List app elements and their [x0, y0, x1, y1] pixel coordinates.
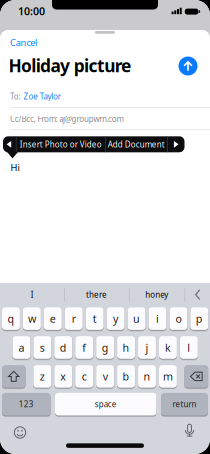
- button[interactable]: Emoji: [12, 424, 28, 440]
- staticText: x: [60, 369, 66, 383]
- staticText: I: [31, 289, 34, 300]
- staticText: 10:00: [18, 4, 45, 18]
- button[interactable]: space: [55, 393, 156, 415]
- staticText: Hi: [10, 161, 19, 173]
- staticText: Cancel: [10, 36, 37, 49]
- staticText: u: [133, 311, 140, 326]
- button[interactable]: Hide predictions: [187, 285, 207, 305]
- button[interactable]: g: [96, 336, 114, 359]
- button[interactable]: e: [44, 307, 62, 330]
- staticText: t: [93, 311, 97, 326]
- button[interactable]: v: [96, 365, 114, 388]
- staticText: Zoe Taylor: [24, 91, 61, 102]
- button[interactable]: Cancel: [10, 36, 70, 48]
- button[interactable]: return: [161, 393, 208, 415]
- staticText: k: [165, 340, 171, 355]
- staticText: o: [175, 311, 181, 326]
- staticText: 123: [19, 399, 34, 409]
- staticText: p: [196, 311, 203, 326]
- staticText: a: [18, 340, 24, 355]
- button[interactable]: there: [66, 285, 126, 305]
- staticText: Holiday picture: [8, 54, 131, 77]
- button[interactable]: w: [23, 307, 41, 330]
- button[interactable]: Add Document: [106, 136, 167, 152]
- button[interactable]: n: [138, 365, 156, 388]
- button[interactable]: Insert Photo or Video: [16, 136, 105, 152]
- staticText: honey: [145, 289, 168, 300]
- staticText: e: [50, 311, 56, 326]
- button[interactable]: u: [128, 307, 145, 330]
- staticText: z: [40, 369, 45, 383]
- staticText: Add Document: [108, 139, 165, 150]
- button[interactable]: Shift: [2, 365, 25, 388]
- button[interactable]: Previous menu items: [3, 136, 16, 152]
- button[interactable]: d: [54, 336, 72, 359]
- staticText: c: [82, 369, 87, 383]
- staticText: j: [145, 340, 148, 355]
- staticText: f: [82, 340, 86, 355]
- staticText: r: [72, 311, 76, 326]
- button[interactable]: a: [12, 336, 30, 359]
- button[interactable]: p: [190, 307, 208, 330]
- staticText: return: [172, 399, 196, 409]
- button[interactable]: o: [169, 307, 187, 330]
- staticText: m: [163, 369, 173, 383]
- staticText: q: [7, 311, 14, 326]
- staticText: i: [156, 311, 159, 326]
- button[interactable]: b: [117, 365, 135, 388]
- staticText: space: [95, 399, 117, 409]
- button[interactable]: r: [65, 307, 83, 330]
- staticText: n: [143, 369, 150, 383]
- button[interactable]: s: [33, 336, 51, 359]
- staticText: v: [103, 369, 108, 383]
- staticText: To:: [10, 91, 21, 102]
- button[interactable]: c: [75, 365, 93, 388]
- button[interactable]: I: [2, 285, 62, 305]
- button[interactable]: m: [159, 365, 177, 388]
- button[interactable]: Dictate: [181, 422, 197, 438]
- staticText: d: [60, 340, 67, 355]
- button[interactable]: q: [2, 307, 20, 330]
- staticText: w: [28, 311, 36, 326]
- button[interactable]: t: [86, 307, 104, 330]
- button[interactable]: k: [159, 336, 177, 359]
- staticText: s: [40, 340, 45, 355]
- staticText: h: [123, 340, 130, 355]
- button[interactable]: y: [107, 307, 125, 330]
- button[interactable]: More menu items: [168, 136, 184, 152]
- button[interactable]: To:: [10, 88, 206, 104]
- button[interactable]: f: [75, 336, 93, 359]
- staticText: Insert Photo or Video: [20, 139, 102, 150]
- button[interactable]: 123: [2, 393, 50, 415]
- staticText: there: [86, 289, 107, 300]
- button[interactable]: Delete: [184, 365, 208, 388]
- button[interactable]: l: [180, 336, 198, 359]
- staticText: Cc/Bcc, From: aj@groupwm.com: [10, 113, 124, 124]
- button[interactable]: i: [148, 307, 166, 330]
- button[interactable]: Send: [178, 56, 197, 75]
- button[interactable]: x: [54, 365, 72, 388]
- staticText: l: [187, 340, 190, 355]
- button[interactable]: honey: [131, 285, 183, 305]
- staticText: y: [113, 311, 118, 326]
- button[interactable]: j: [138, 336, 156, 359]
- staticText: b: [123, 369, 130, 383]
- button[interactable]: z: [33, 365, 51, 388]
- staticText: g: [102, 340, 109, 355]
- button[interactable]: h: [117, 336, 135, 359]
- button[interactable]: Cc/Bcc, From: aj@groupwm.com: [10, 111, 206, 127]
